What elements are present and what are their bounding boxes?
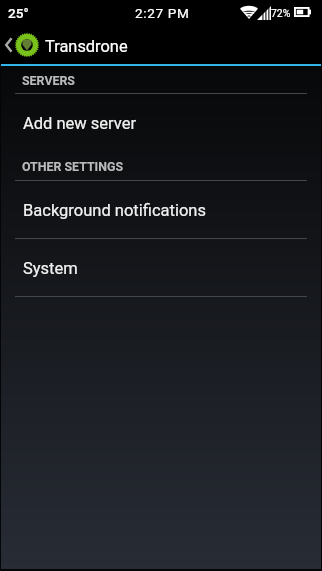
- staticText: Transdrone: [45, 37, 128, 56]
- button[interactable]: Background notifications: [0, 181, 322, 239]
- button[interactable]: Navigate up: [0, 26, 140, 64]
- staticText: System: [23, 259, 78, 278]
- staticText: Background notifications: [23, 201, 206, 220]
- staticText: 72%: [271, 7, 291, 19]
- button[interactable]: Add new server: [0, 94, 322, 151]
- staticText: SERVERS: [22, 73, 75, 88]
- other: Navigate up: [5, 38, 12, 52]
- button[interactable]: System: [0, 239, 322, 297]
- staticText: Add new server: [23, 114, 137, 133]
- staticText: 25°: [8, 5, 29, 21]
- staticText: OTHER SETTINGS: [22, 159, 123, 174]
- staticText: 2:27 PM: [135, 5, 190, 21]
